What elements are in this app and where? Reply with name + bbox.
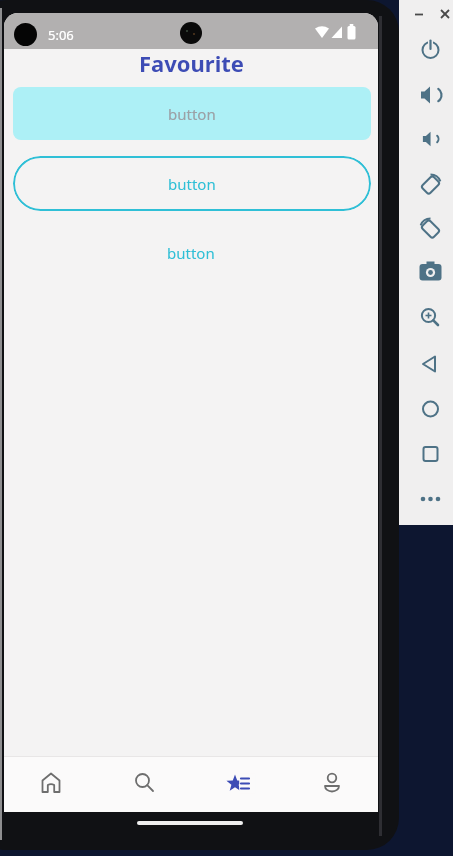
staticText: button bbox=[167, 243, 215, 263]
button[interactable] bbox=[286, 757, 378, 812]
button[interactable]: button bbox=[161, 237, 221, 269]
staticText: button bbox=[168, 104, 216, 124]
button[interactable] bbox=[98, 757, 192, 812]
staticText: button bbox=[168, 174, 216, 194]
button[interactable] bbox=[4, 757, 98, 812]
button[interactable]: button bbox=[13, 87, 371, 140]
staticText: 5:06 bbox=[48, 26, 74, 44]
staticText: Favourite bbox=[139, 48, 244, 78]
button[interactable] bbox=[192, 757, 286, 812]
button[interactable]: button bbox=[13, 156, 371, 211]
